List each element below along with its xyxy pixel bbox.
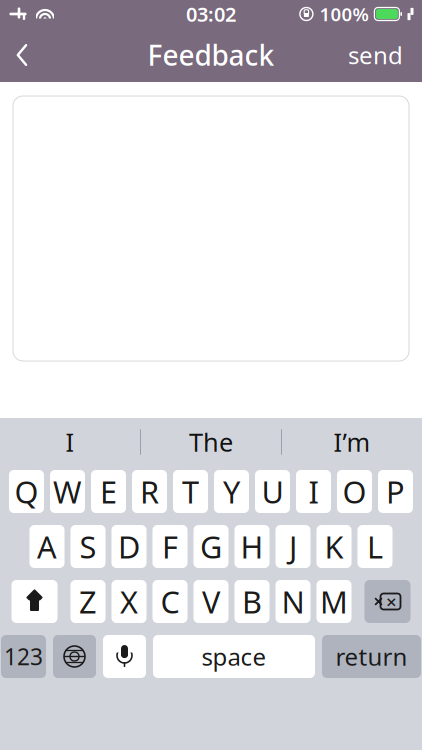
button[interactable]: K	[316, 525, 351, 568]
staticText: 123	[4, 641, 43, 671]
button[interactable]: R	[132, 470, 167, 513]
button[interactable]: I	[0, 420, 140, 464]
button[interactable]: T	[173, 470, 208, 513]
staticText: space	[201, 641, 266, 672]
staticText: I	[308, 471, 318, 512]
staticText: B	[242, 581, 262, 622]
button[interactable]: Back	[0, 28, 44, 82]
button[interactable]: Y	[214, 470, 249, 513]
staticText: P	[386, 471, 405, 512]
staticText: Y	[223, 471, 240, 512]
button[interactable]: G	[193, 525, 228, 568]
staticText: ×	[386, 589, 397, 614]
button[interactable]: J	[275, 525, 310, 568]
button[interactable]: U	[255, 470, 290, 513]
staticText: X	[120, 581, 138, 622]
staticText: L	[367, 526, 383, 567]
staticText: N	[281, 581, 304, 622]
staticText: S	[79, 526, 96, 567]
button[interactable]: The	[141, 420, 281, 464]
button[interactable]: I’m	[282, 420, 422, 464]
staticText: R	[140, 471, 159, 512]
button[interactable]: space	[153, 635, 315, 678]
button[interactable]: B	[234, 580, 269, 623]
staticText: G	[200, 526, 222, 567]
staticText: Q	[14, 471, 38, 512]
staticText: I	[65, 425, 74, 459]
staticText: U	[261, 471, 283, 512]
button[interactable]: Shift	[11, 580, 57, 623]
staticText: 03:02	[186, 1, 236, 27]
staticText: return	[335, 641, 407, 672]
button[interactable]: X	[111, 580, 146, 623]
button[interactable]: S	[70, 525, 105, 568]
button[interactable]: Next keyboard	[53, 635, 96, 678]
button[interactable]: L	[357, 525, 392, 568]
button[interactable]: W	[50, 470, 85, 513]
button[interactable]: E	[91, 470, 126, 513]
staticText: T	[182, 471, 199, 512]
button[interactable]: I	[296, 470, 331, 513]
button[interactable]: C	[152, 580, 187, 623]
staticText: D	[118, 526, 140, 567]
staticText: F	[162, 526, 178, 567]
button[interactable]: P	[378, 470, 413, 513]
staticText: K	[324, 526, 343, 567]
button[interactable]: M	[316, 580, 351, 623]
staticText: 100%	[319, 2, 368, 26]
button[interactable]: A	[29, 525, 64, 568]
button[interactable]: Z	[70, 580, 105, 623]
staticText: W	[53, 471, 82, 512]
button[interactable]: 123	[1, 635, 46, 678]
button[interactable]: Q	[9, 470, 44, 513]
button[interactable]: O	[337, 470, 372, 513]
staticText: A	[37, 526, 57, 567]
button[interactable]: F	[152, 525, 187, 568]
staticText: V	[202, 581, 220, 622]
button[interactable]: send	[329, 28, 422, 82]
staticText: send	[348, 39, 403, 71]
staticText: C	[160, 581, 179, 622]
staticText: O	[342, 471, 366, 512]
staticText: Z	[79, 581, 97, 622]
staticText: H	[240, 526, 263, 567]
staticText: I’m	[333, 425, 370, 459]
button[interactable]: H	[234, 525, 269, 568]
button[interactable]: V	[193, 580, 228, 623]
staticText: Feedback	[147, 36, 274, 74]
staticText: J	[289, 526, 297, 567]
button[interactable]: N	[275, 580, 310, 623]
button[interactable]: Dictate	[103, 635, 146, 678]
button[interactable]: Delete	[364, 580, 410, 623]
staticText: M	[320, 581, 348, 622]
staticText: E	[100, 471, 117, 512]
staticText: The	[189, 425, 233, 459]
button[interactable]: return	[322, 635, 421, 678]
button[interactable]: D	[111, 525, 146, 568]
